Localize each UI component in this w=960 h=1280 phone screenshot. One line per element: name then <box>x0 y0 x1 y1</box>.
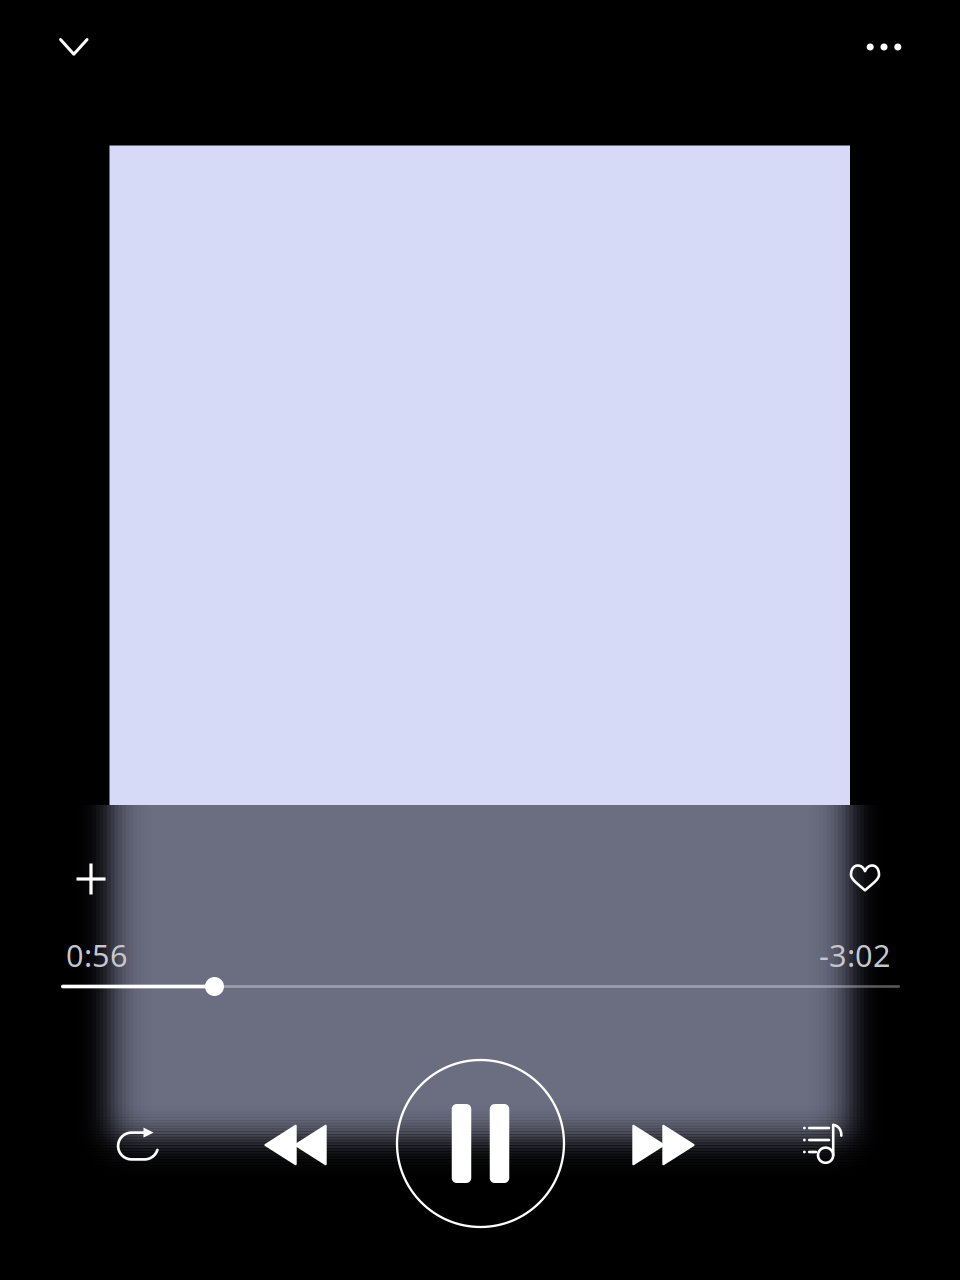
button[interactable]: Next track <box>616 1101 712 1189</box>
button[interactable]: Playing next <box>779 1100 867 1188</box>
button[interactable]: Repeat <box>94 1102 182 1190</box>
button[interactable]: Previous track <box>247 1101 343 1189</box>
button[interactable]: Collapse <box>34 15 114 79</box>
button[interactable]: Pause <box>390 1053 570 1233</box>
staticText: 0:56 <box>66 935 128 975</box>
button[interactable]: More options <box>844 15 924 79</box>
button[interactable]: Add to library <box>55 843 127 915</box>
button[interactable]: Favourite <box>829 842 901 914</box>
staticText: -3:02 <box>819 935 891 975</box>
